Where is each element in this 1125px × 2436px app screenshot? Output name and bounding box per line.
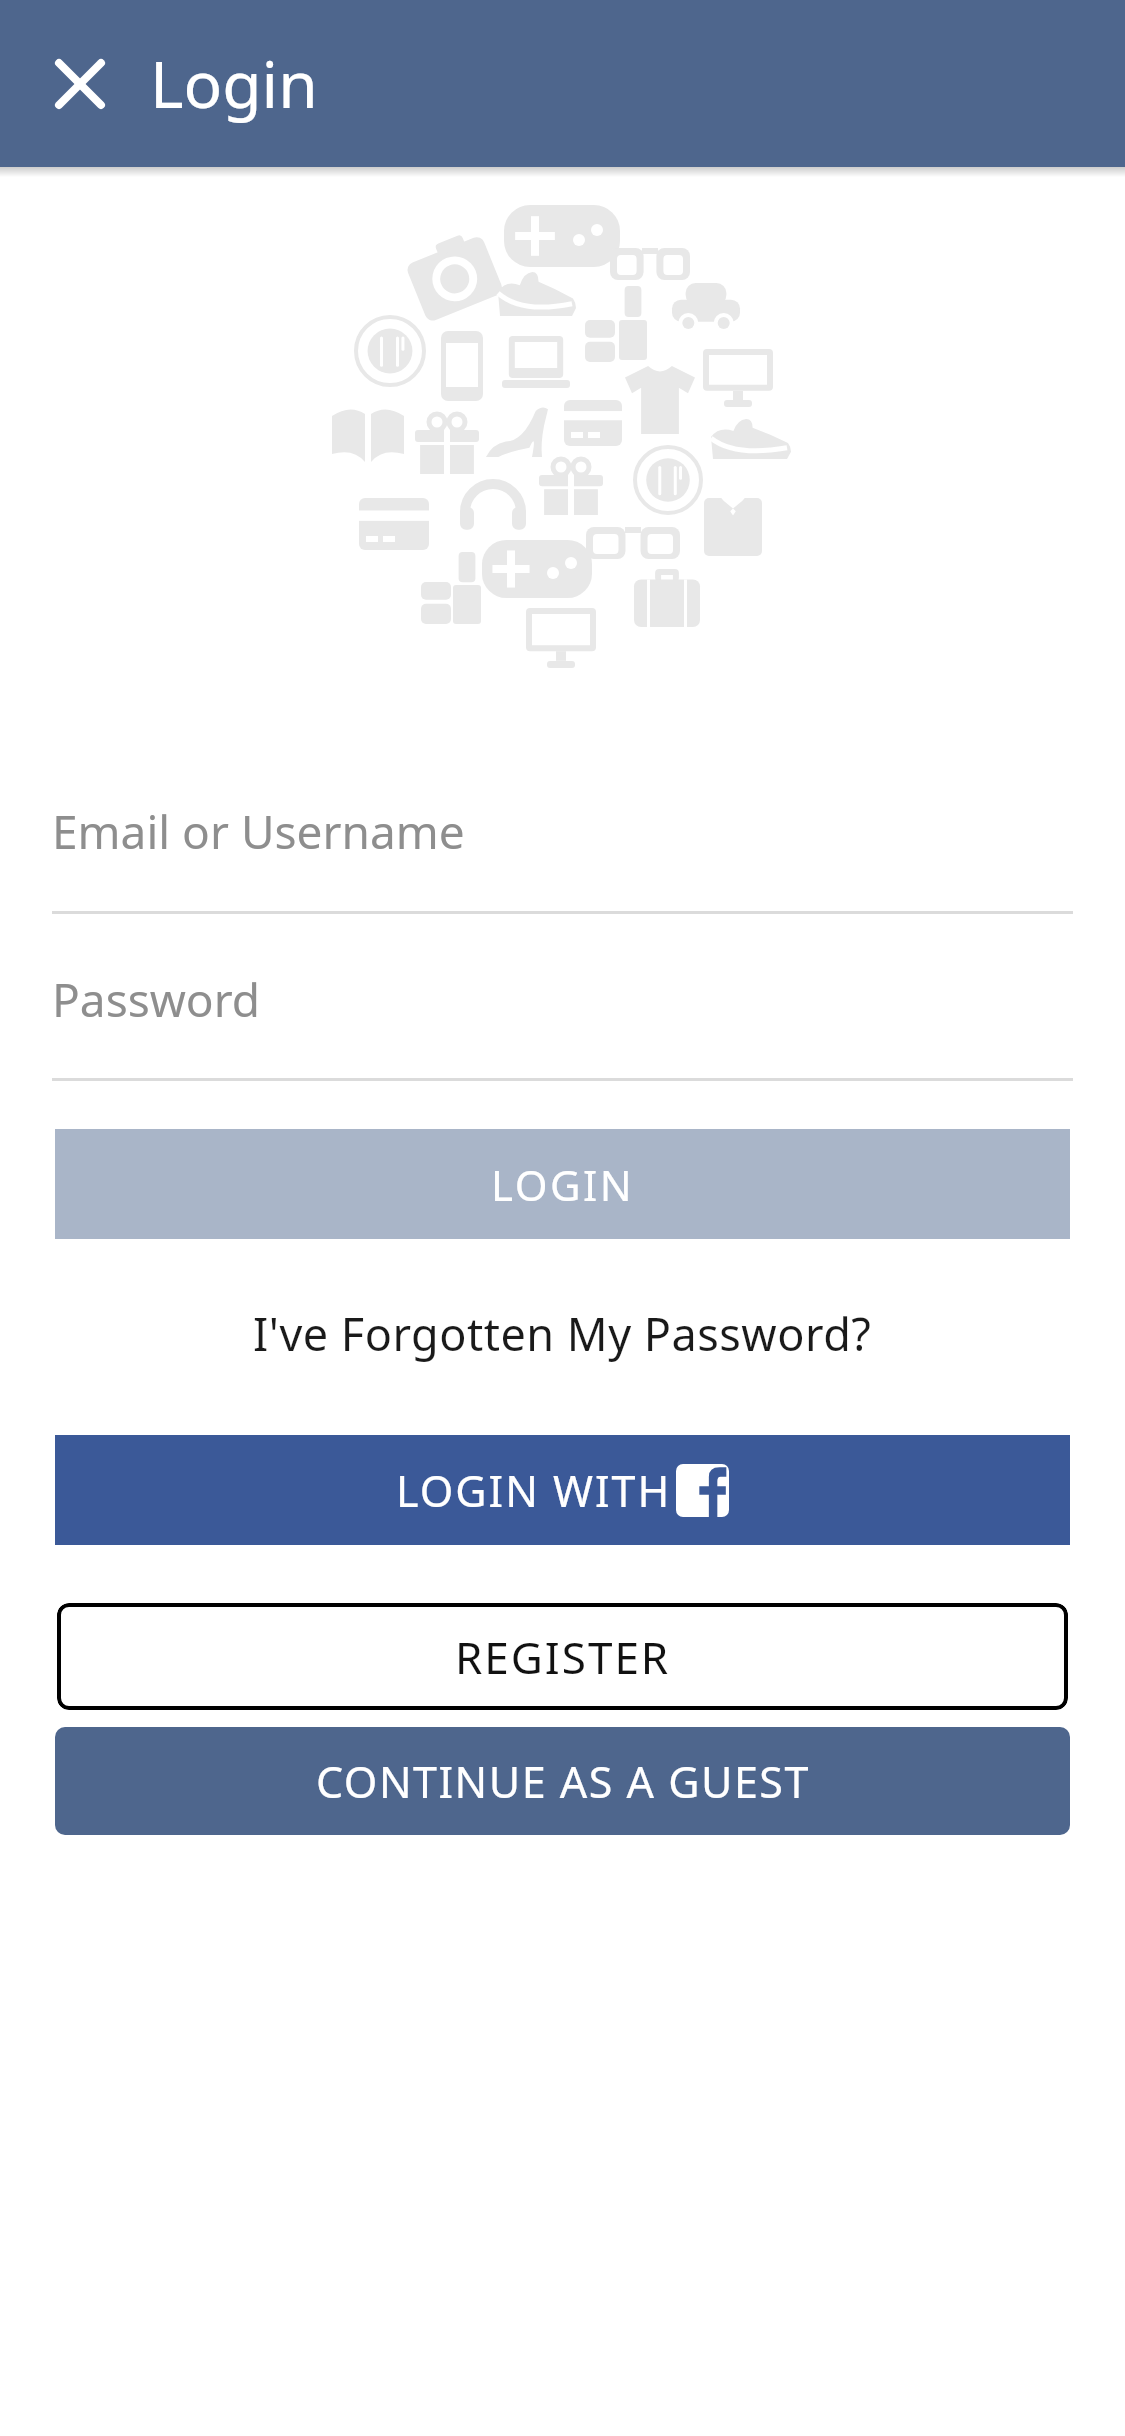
button[interactable]: Email or Username <box>52 790 1073 914</box>
button[interactable]: Password <box>52 958 1073 1081</box>
staticText: I've Forgotten My Password? <box>253 1303 872 1364</box>
staticText: LOGIN WITH <box>396 1461 672 1520</box>
button[interactable]: REGISTER <box>57 1603 1068 1710</box>
staticText: Password <box>52 968 261 1031</box>
button[interactable]: I've Forgotten My Password? <box>0 1303 1125 1364</box>
button[interactable]: CONTINUE AS A GUEST <box>55 1727 1070 1835</box>
button[interactable]: LOGIN <box>55 1129 1070 1239</box>
button[interactable] <box>40 44 120 124</box>
button[interactable]: LOGIN WITH <box>55 1435 1070 1545</box>
staticText: LOGIN <box>491 1156 635 1213</box>
staticText: Email or Username <box>52 800 465 863</box>
staticText: CONTINUE AS A GUEST <box>316 1752 810 1811</box>
staticText: Login <box>150 40 318 127</box>
staticText: REGISTER <box>455 1627 671 1687</box>
